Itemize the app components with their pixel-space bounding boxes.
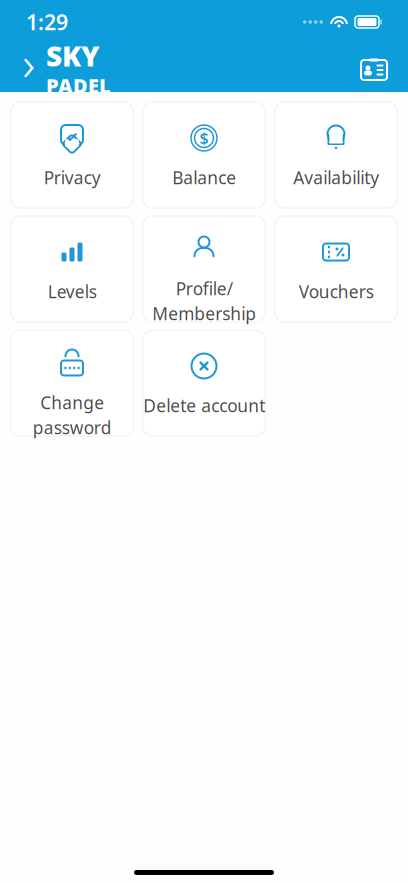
staticText: Delete account [143,394,265,417]
staticText: Availability [293,166,379,189]
staticText: SKY [46,37,100,74]
staticText: Change password [32,391,111,439]
staticText: 1:29 [26,8,68,36]
button[interactable]: Change password [11,330,133,436]
button[interactable]: Membership card [352,46,396,90]
button[interactable]: Back [12,46,46,90]
button[interactable]: Delete account [143,330,265,436]
button[interactable]: Levels [11,216,133,322]
button[interactable]: $ [143,102,265,208]
staticText: Privacy [43,166,100,189]
button[interactable]: Profile/ Membership [143,216,265,322]
staticText: PADEL [46,72,111,99]
staticText: Profile/ Membership [152,277,256,325]
button[interactable]: Privacy [11,102,133,208]
button[interactable]: Vouchers [275,216,397,322]
staticText: $ [199,127,208,149]
staticText: Vouchers [298,280,373,303]
staticText: Levels [47,280,96,303]
button[interactable]: Availability [275,102,397,208]
staticText: Balance [172,166,236,189]
